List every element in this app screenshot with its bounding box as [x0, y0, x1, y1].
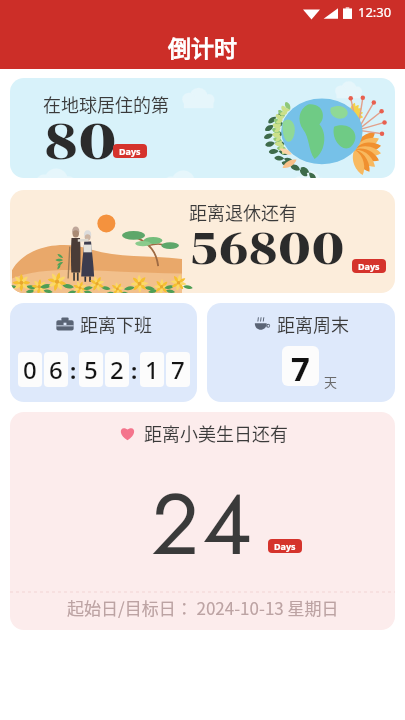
staticText: Days [358, 260, 380, 272]
staticText: : [131, 355, 138, 385]
staticText: 5 [84, 353, 98, 386]
staticText: 7 [171, 353, 185, 386]
button[interactable]: 距离小美生日还有 [10, 412, 395, 630]
button[interactable]: 距离下班 [10, 303, 197, 402]
staticText: 倒计时 [168, 30, 237, 63]
staticText: : [70, 355, 77, 385]
staticText: 起始日/目标日： 2024-10-13 星期日 [67, 595, 339, 620]
staticText: 6 [49, 353, 63, 386]
staticText: 80 [44, 111, 117, 171]
button[interactable]: 距离退休还有 [10, 190, 395, 293]
staticText: 距离周末 [277, 311, 349, 337]
staticText: 0 [23, 353, 37, 386]
staticText: 天 [324, 372, 338, 391]
staticText: 7 [291, 346, 310, 386]
staticText: Days [119, 145, 141, 157]
staticText: 2 [110, 353, 124, 386]
staticText: 距离退休还有 [189, 199, 297, 225]
staticText: 1 [145, 353, 159, 386]
button[interactable]: 在地球居住的第 [10, 78, 395, 178]
staticText: 24 [151, 463, 255, 586]
staticText: Days [274, 540, 296, 552]
staticText: 距离下班 [80, 311, 152, 337]
button[interactable]: 距离周末 [207, 303, 395, 402]
staticText: 在地球居住的第 [43, 91, 169, 117]
staticText: 12:30 [358, 3, 392, 21]
button[interactable]: 倒计时 [0, 24, 405, 69]
staticText: 距离小美生日还有 [144, 420, 288, 446]
staticText: 56800 [191, 223, 345, 275]
